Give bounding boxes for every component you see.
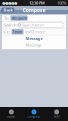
button[interactable]: Compose [23,107,45,121]
staticText: 100% [57,0,66,6]
button[interactable]: Back [1,7,14,12]
staticText: Compose [27,115,40,118]
button[interactable]: Info [45,107,68,121]
staticText: Message [25,36,42,41]
staticText: and 2 more [25,29,45,34]
staticText: Search [4,22,16,27]
staticText: ●●●●● [2,1,17,5]
staticText: Cc: [4,29,10,34]
staticText: To: [4,15,9,21]
staticText: Recipient [11,15,26,21]
staticText: Back [3,7,12,13]
staticText: Team [12,29,22,34]
staticText: Compose [22,6,45,14]
staticText: Home [7,115,15,118]
staticText: 12:30 PM [29,0,45,6]
staticText: Message [25,42,41,47]
button[interactable]: Home [0,107,23,121]
staticText: Search term [22,22,44,27]
staticText: Info [54,115,60,118]
